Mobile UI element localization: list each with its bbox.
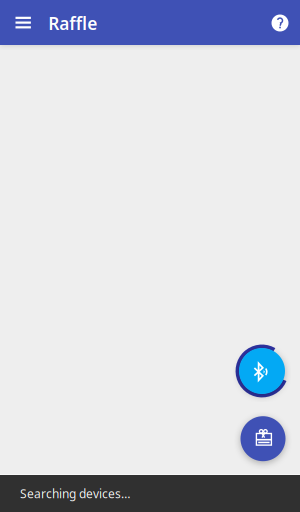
button[interactable]: Scan for devices bbox=[232, 341, 292, 401]
button[interactable]: Start raffle bbox=[238, 414, 288, 464]
staticText: Searching devices… bbox=[20, 485, 130, 501]
button[interactable]: Open navigation menu bbox=[3, 0, 43, 45]
staticText: Raffle bbox=[48, 12, 97, 35]
button[interactable]: Help bbox=[260, 0, 300, 45]
